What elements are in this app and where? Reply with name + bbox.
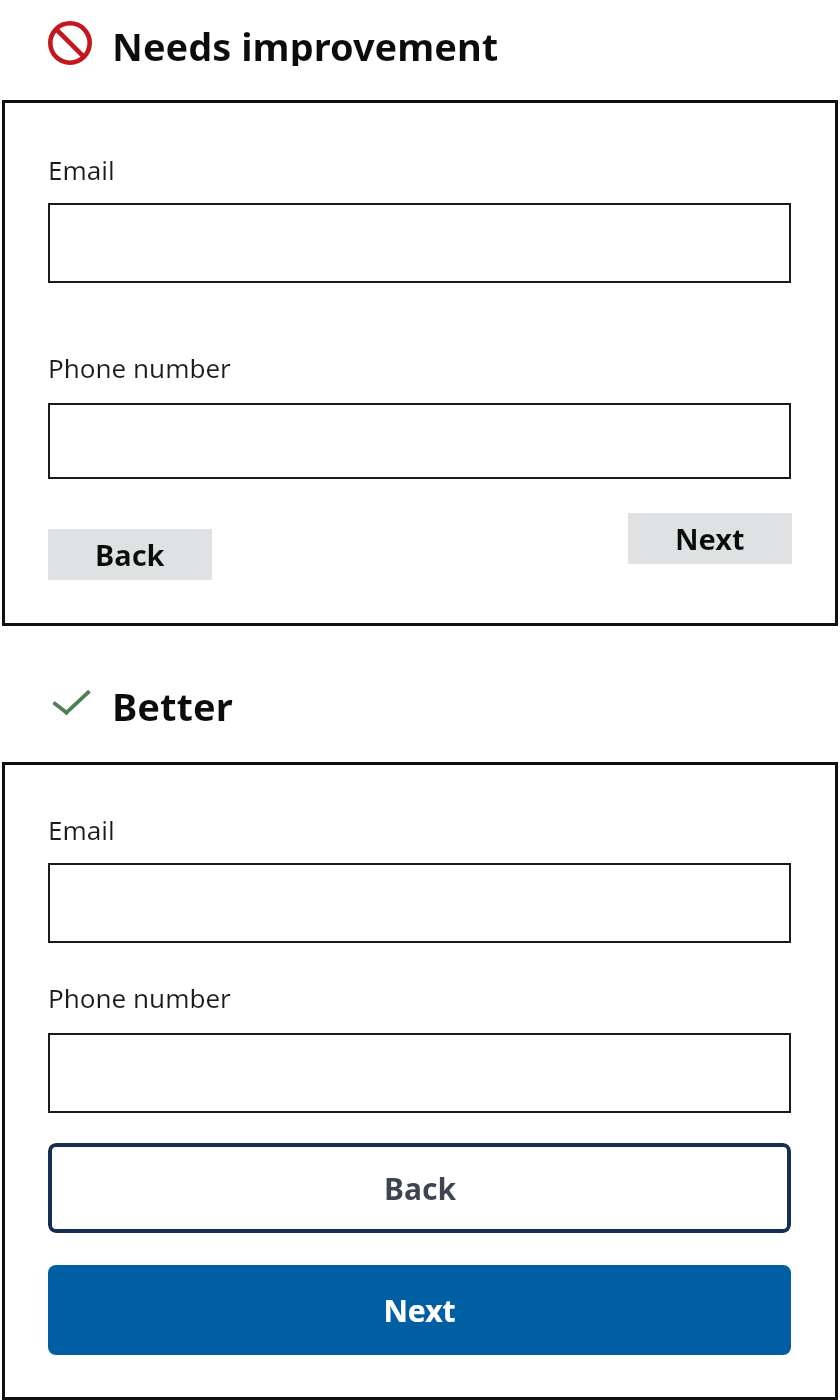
staticText: Back: [384, 1168, 456, 1209]
staticText: Email: [48, 812, 115, 847]
staticText: Back: [95, 535, 165, 574]
other: Better: [52, 687, 90, 719]
button[interactable]: [48, 403, 791, 479]
button[interactable]: Back: [48, 529, 212, 580]
staticText: Next: [675, 519, 745, 558]
staticText: Email: [48, 152, 115, 187]
staticText: Needs improvement: [112, 20, 499, 66]
staticText: Phone number: [48, 350, 231, 385]
button[interactable]: Next: [48, 1265, 791, 1355]
button[interactable]: Back: [48, 1143, 791, 1233]
staticText: Better: [112, 680, 233, 726]
button[interactable]: Next: [628, 513, 792, 564]
staticText: Phone number: [48, 980, 231, 1015]
button[interactable]: [48, 1033, 791, 1113]
staticText: Next: [383, 1290, 456, 1331]
button[interactable]: [48, 203, 791, 283]
button[interactable]: [48, 863, 791, 943]
other: Needs improvement: [48, 21, 92, 65]
